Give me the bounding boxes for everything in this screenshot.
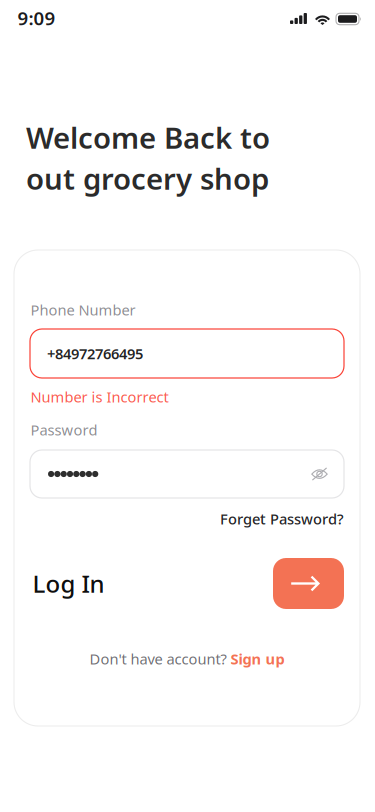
staticText: +84972766495	[47, 344, 143, 363]
staticText: Number is Incorrect	[30, 387, 168, 406]
staticText: Sign up	[230, 649, 284, 668]
staticText: 9:09	[17, 5, 55, 30]
staticText: Log In	[32, 568, 104, 599]
button[interactable]: Log In	[273, 558, 344, 609]
staticText: Welcome Back to	[26, 118, 270, 157]
staticText: Phone Number	[30, 300, 135, 319]
button[interactable]: Show password	[311, 466, 328, 481]
button[interactable]: Forget Password?	[30, 509, 344, 528]
staticText: Forget Password?	[220, 509, 344, 528]
staticText: out grocery shop	[26, 159, 269, 198]
button[interactable]: Sign up	[230, 649, 284, 668]
staticText: Password	[30, 420, 97, 439]
staticText: Don't have account?	[89, 649, 226, 668]
